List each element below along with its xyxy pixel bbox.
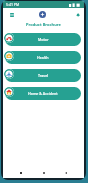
button[interactable]: Notifications	[73, 10, 82, 19]
button[interactable]: Health	[5, 51, 81, 64]
staticText: Travel	[38, 73, 49, 78]
staticText: Home & Accident	[28, 91, 58, 96]
button[interactable]: Motor	[5, 33, 81, 46]
staticText: Health	[37, 55, 49, 60]
button[interactable]: Recents	[16, 168, 26, 178]
staticText: Motor	[38, 37, 49, 42]
button[interactable]: Home	[39, 168, 49, 178]
button[interactable]: Menu	[7, 10, 16, 19]
button[interactable]: Home & Accident	[5, 87, 81, 100]
button[interactable]: Travel	[5, 69, 81, 82]
staticText: 5:41 PM	[6, 2, 20, 7]
button[interactable]: Back	[61, 168, 71, 178]
staticText: Product Brochure	[26, 22, 61, 27]
